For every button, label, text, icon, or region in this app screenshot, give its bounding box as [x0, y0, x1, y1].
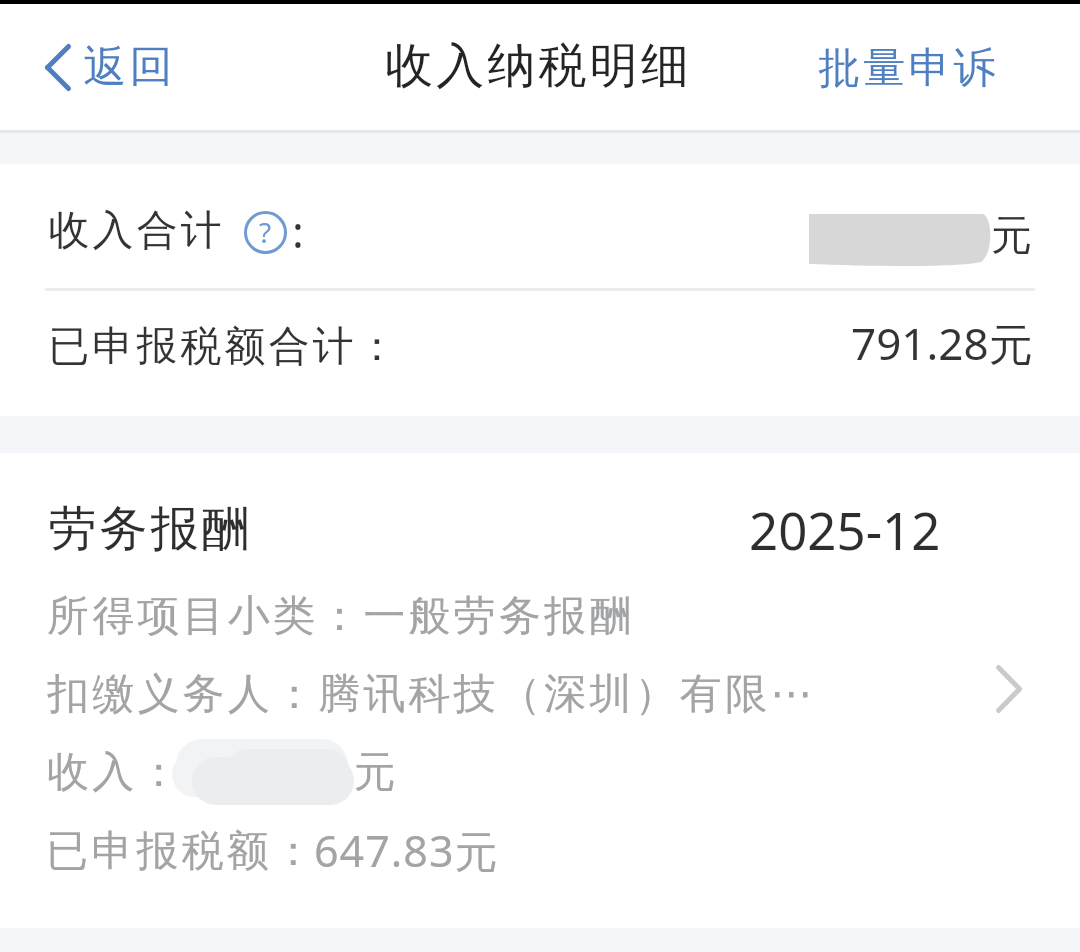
- button[interactable]: 批量申诉: [797, 12, 1020, 122]
- staticText: 791.28元: [851, 313, 1033, 373]
- button[interactable]: [0, 164, 1080, 288]
- staticText: 元: [991, 210, 1032, 262]
- other: Open detail: [996, 665, 1022, 713]
- button[interactable]: Back: [45, 40, 174, 94]
- staticText: :: [292, 201, 304, 261]
- staticText: 劳务报酬: [47, 499, 251, 559]
- staticText: 647.83元: [314, 821, 499, 880]
- staticText: ?: [259, 213, 272, 251]
- staticText: 扣缴义务人：腾讯科技（深圳）有限⋯: [47, 668, 816, 721]
- staticText: 收入合计: [47, 205, 223, 257]
- other: Back: [45, 44, 71, 91]
- staticText: 收入纳税明细: [385, 36, 693, 96]
- button[interactable]: 劳务报酬: [0, 453, 1080, 928]
- button[interactable]: [0, 291, 1080, 416]
- staticText: 元: [354, 746, 396, 799]
- staticText: 收入：: [47, 746, 183, 799]
- staticText: 已申报税额合计：: [47, 321, 399, 373]
- staticText: 2025-12: [749, 495, 941, 564]
- staticText: 已申报税额：: [46, 825, 318, 878]
- staticText: 所得项目小类：一般劳务报酬: [47, 590, 635, 643]
- staticText: 返回: [82, 40, 174, 94]
- staticText: 批量申诉: [817, 42, 997, 95]
